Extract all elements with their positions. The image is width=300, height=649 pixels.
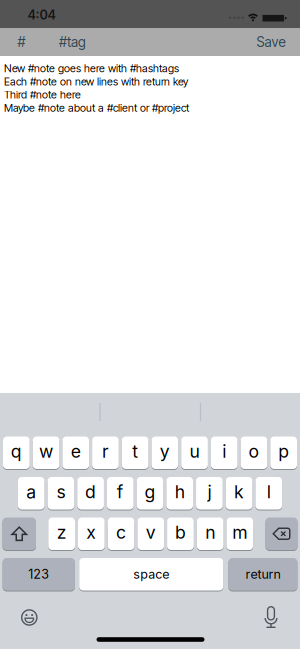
button[interactable]: k (226, 477, 252, 509)
staticText: return (245, 567, 280, 582)
staticText: v (146, 522, 156, 543)
staticText: n (205, 522, 215, 543)
button[interactable]: Save (249, 28, 293, 56)
button[interactable]: c (108, 517, 134, 550)
button[interactable]: Hashtag (9, 28, 33, 56)
staticText: m (232, 522, 247, 543)
staticText: #tag (59, 34, 86, 50)
button[interactable]: z (48, 517, 75, 550)
staticText: q (11, 441, 22, 462)
button[interactable]: a (18, 477, 45, 509)
staticText: r (102, 441, 109, 462)
button[interactable]: Dictate (264, 606, 278, 628)
staticText: b (175, 522, 186, 543)
button[interactable]: Emoji (21, 609, 37, 625)
staticText: c (116, 522, 126, 543)
staticText: y (160, 441, 170, 462)
button[interactable]: 123 (3, 558, 75, 590)
staticText: space (133, 567, 169, 582)
staticText: # (17, 34, 25, 50)
staticText: d (85, 481, 96, 502)
staticText: p (278, 441, 289, 462)
button[interactable]: q (3, 436, 30, 469)
button[interactable]: u (181, 436, 208, 469)
staticText: 123 (28, 567, 49, 582)
button[interactable]: return (228, 558, 297, 590)
staticText: Third #note here (4, 88, 81, 101)
button[interactable]: g (137, 477, 163, 509)
staticText: h (175, 481, 185, 502)
staticText: o (248, 441, 259, 462)
button[interactable]: l (255, 477, 282, 509)
staticText: Maybe #note about a #client or #project (4, 101, 189, 114)
staticText: 4:04 (27, 7, 55, 23)
button[interactable]: Shift (2, 517, 36, 550)
staticText: s (56, 481, 65, 502)
button[interactable]: m (226, 517, 253, 550)
staticText: j (207, 481, 211, 502)
staticText: a (26, 481, 36, 502)
button[interactable]: n (197, 517, 223, 550)
button[interactable]: b (167, 517, 194, 550)
button[interactable]: y (151, 436, 178, 469)
button[interactable]: t (122, 436, 148, 469)
button[interactable]: s (48, 477, 74, 509)
button[interactable]: Delete (265, 517, 297, 550)
button[interactable]: w (33, 436, 59, 469)
staticText: w (39, 441, 53, 462)
staticText: l (267, 481, 271, 502)
staticText: i (222, 441, 226, 462)
staticText: k (234, 481, 244, 502)
button[interactable]: space (79, 558, 223, 590)
button[interactable]: i (211, 436, 238, 469)
button[interactable]: r (92, 436, 119, 469)
staticText: x (86, 522, 96, 543)
button[interactable]: d (77, 477, 104, 509)
staticText: t (132, 441, 138, 462)
button[interactable]: #tag (52, 28, 92, 56)
button[interactable]: h (166, 477, 193, 509)
button[interactable]: x (78, 517, 105, 550)
button[interactable]: e (62, 436, 89, 469)
button[interactable]: f (107, 477, 134, 509)
staticText: g (144, 481, 155, 502)
staticText: u (190, 441, 200, 462)
button[interactable]: v (137, 517, 164, 550)
staticText: Each #note on new lines with return key (4, 75, 188, 88)
button[interactable]: p (270, 436, 297, 469)
staticText: z (57, 522, 67, 543)
staticText: Save (256, 34, 285, 50)
staticText: e (71, 441, 81, 462)
staticText: New #note goes here with #hashtags (4, 62, 179, 75)
staticText: f (117, 481, 124, 502)
button[interactable]: j (196, 477, 223, 509)
button[interactable]: o (241, 436, 267, 469)
